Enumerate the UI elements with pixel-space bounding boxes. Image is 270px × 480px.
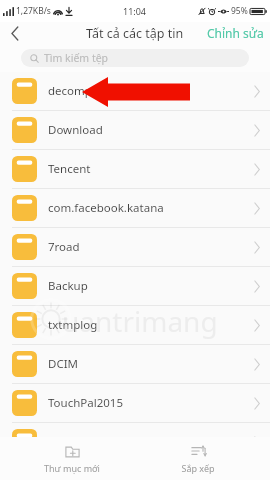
button[interactable]: Back xyxy=(0,22,30,44)
staticText: Download xyxy=(48,122,103,138)
button[interactable]: Chỉnh sửa xyxy=(207,25,264,41)
button[interactable]: decomp xyxy=(0,72,270,111)
staticText: Tìm kiếm tệp xyxy=(44,51,109,65)
button[interactable]: Tencent xyxy=(0,150,270,189)
button[interactable]: Tìm kiếm tệp xyxy=(21,49,249,67)
button[interactable]: DCIM xyxy=(0,345,270,384)
staticText: 7road xyxy=(48,239,80,255)
staticText: Chỉnh sửa xyxy=(207,25,264,41)
staticText: TouchPal2015 xyxy=(48,395,123,411)
staticText: txtmplog xyxy=(48,317,98,333)
staticText: Tencent xyxy=(48,161,91,177)
button[interactable]: Sắp xếp xyxy=(148,440,248,478)
staticText: decomp xyxy=(48,83,92,99)
staticText: Tất cả các tập tin xyxy=(86,25,184,42)
button[interactable]: TouchPal2015 xyxy=(0,384,270,423)
staticText: com.facebook.katana xyxy=(48,200,164,216)
button[interactable]: 7road xyxy=(0,228,270,267)
staticText: Backup xyxy=(48,278,88,294)
button[interactable]: Download xyxy=(0,111,270,150)
staticText: 95% xyxy=(231,5,248,17)
button[interactable]: Backup xyxy=(0,267,270,306)
button[interactable]: com.facebook.katana xyxy=(0,189,270,228)
staticText: DCIM xyxy=(48,356,78,372)
button[interactable]: Thư mục mới xyxy=(22,440,122,478)
button[interactable]: txtmplog xyxy=(0,306,270,345)
staticText: Thư mục mới xyxy=(44,462,100,474)
staticText: Pictures xyxy=(48,463,92,479)
button[interactable]: Pictures xyxy=(0,462,270,480)
staticText: Zamoji xyxy=(48,434,85,450)
staticText: Sắp xếp xyxy=(181,462,215,474)
staticText: uantrimang xyxy=(62,302,218,340)
staticText: 1,27KB/s xyxy=(16,5,51,17)
button[interactable]: Zamoji xyxy=(0,423,270,462)
staticText: 11:04 xyxy=(123,5,147,17)
